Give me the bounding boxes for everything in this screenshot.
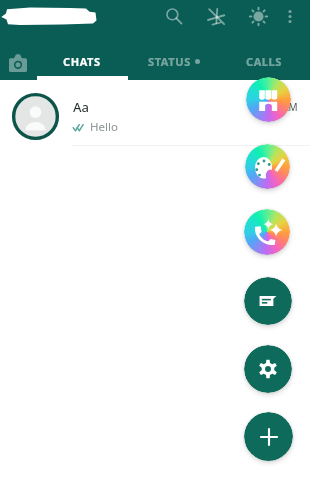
- staticText: CALLS: [246, 54, 283, 69]
- button[interactable]: STATUS: [128, 46, 219, 80]
- button[interactable]: Messages: [244, 277, 292, 325]
- button[interactable]: Themes: [245, 144, 290, 189]
- button[interactable]: More options: [276, 2, 304, 30]
- staticText: 10:34 AM: [254, 100, 298, 114]
- button[interactable]: CALLS: [219, 46, 310, 80]
- button[interactable]: New chat: [244, 412, 293, 461]
- button[interactable]: Airplane mode: [202, 2, 230, 30]
- button[interactable]: Business: [246, 77, 291, 122]
- button[interactable]: Camera: [0, 46, 36, 80]
- button[interactable]: Brightness: [244, 2, 272, 30]
- button[interactable]: CHATS: [36, 46, 128, 80]
- button[interactable]: Settings: [244, 345, 292, 393]
- staticText: CHATS: [63, 54, 101, 69]
- staticText: Aa: [73, 98, 89, 116]
- button[interactable]: Aa: [0, 83, 310, 149]
- staticText: STATUS: [148, 54, 191, 69]
- button[interactable]: Search: [160, 2, 188, 30]
- button[interactable]: Calls: [244, 209, 290, 255]
- staticText: Hello: [90, 119, 118, 135]
